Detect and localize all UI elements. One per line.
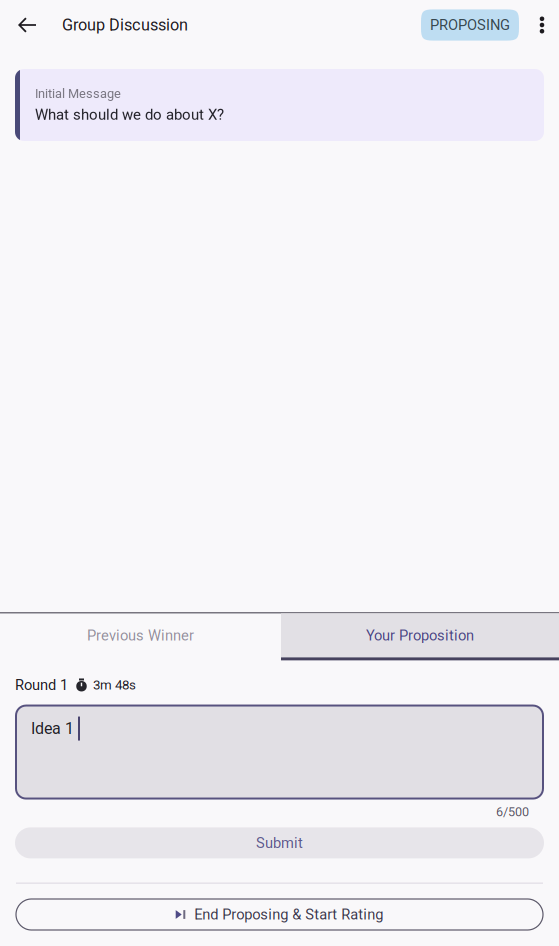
button[interactable]: Your Proposition [281,613,559,660]
staticText: PROPOSING [430,16,510,34]
staticText: What should we do about X? [35,106,224,123]
button[interactable]: More options [525,0,559,50]
staticText: 6/500 [496,805,529,819]
staticText: Group Discussion [62,15,188,35]
staticText: Your Proposition [366,627,474,644]
staticText: Initial Message [35,86,121,101]
staticText: 3m 48s [93,677,136,693]
staticText: End Proposing & Start Rating [194,906,383,923]
button[interactable]: Back [0,0,50,50]
button[interactable]: End Proposing & Start Rating [16,899,543,930]
button[interactable]: Submit [15,827,544,858]
staticText: Idea 1 [31,719,74,738]
staticText: Submit [256,834,303,851]
staticText: Round 1 [15,676,68,694]
staticText: Previous Winner [87,627,194,644]
button[interactable]: Previous Winner [0,613,281,657]
